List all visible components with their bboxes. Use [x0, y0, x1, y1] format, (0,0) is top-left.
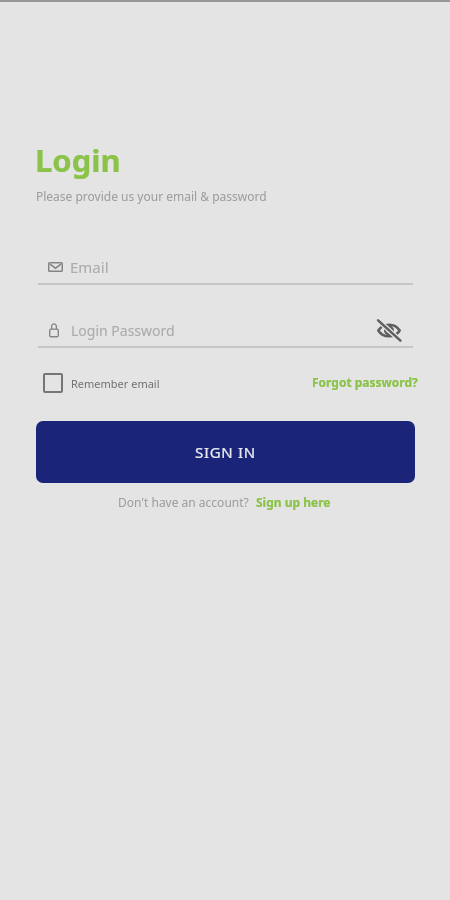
button[interactable]: Forgot password?: [310, 372, 420, 392]
staticText: SIGN IN: [195, 442, 256, 462]
button[interactable]: SIGN IN: [36, 421, 415, 483]
staticText: Don't have an account?: [118, 494, 249, 510]
staticText: Email: [70, 257, 109, 277]
staticText: Remember email: [71, 376, 160, 391]
staticText: Login Password: [71, 321, 175, 340]
staticText: Please provide us your email & password: [36, 188, 267, 204]
button[interactable]: Email: [38, 254, 413, 285]
button[interactable]: Remember email: [43, 371, 160, 395]
staticText: Login: [35, 139, 121, 181]
button[interactable]: Show password: [370, 312, 408, 348]
button[interactable]: Login Password: [38, 317, 413, 348]
staticText: Forgot password?: [312, 374, 418, 390]
button[interactable]: Sign up here: [254, 492, 333, 512]
staticText: Sign up here: [256, 494, 331, 510]
